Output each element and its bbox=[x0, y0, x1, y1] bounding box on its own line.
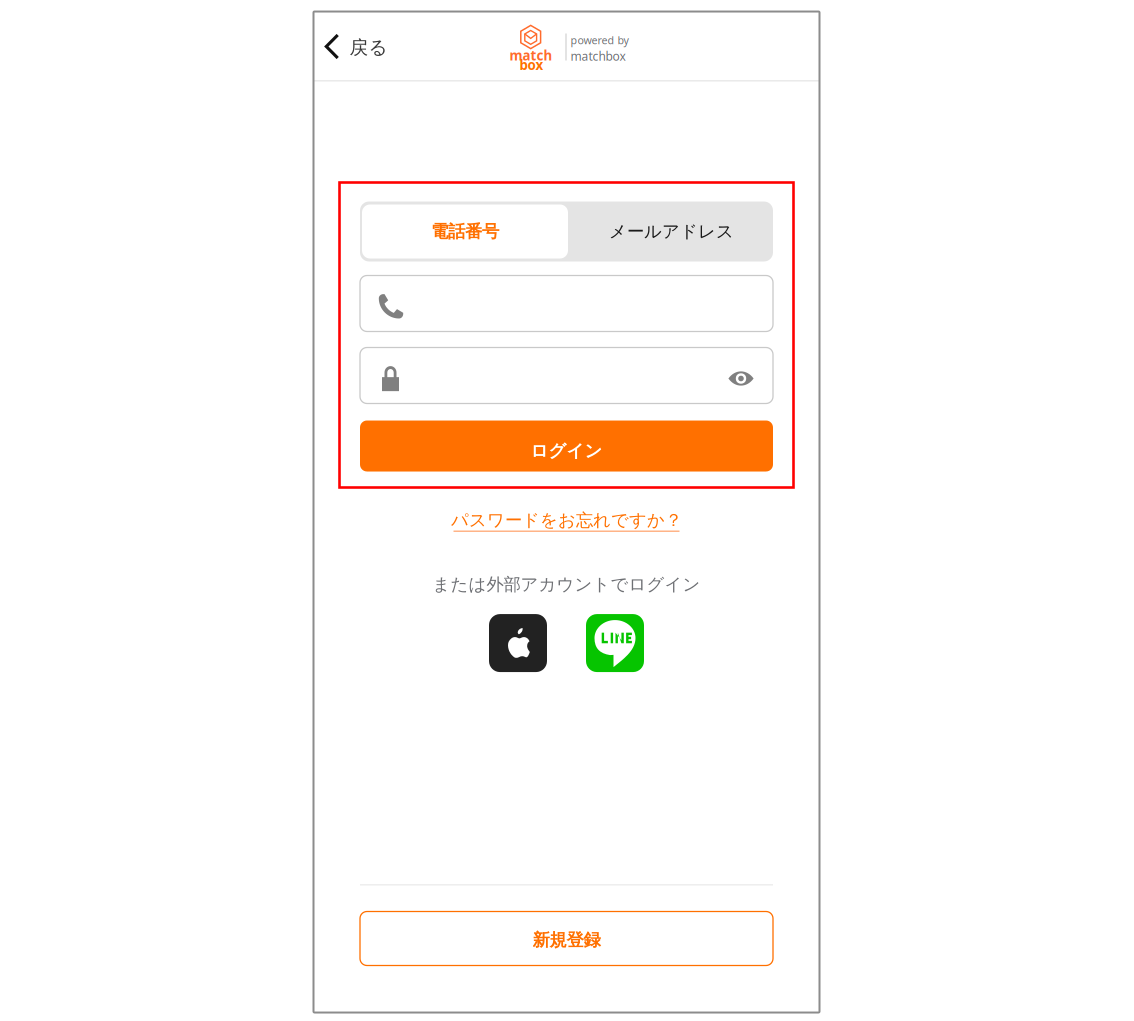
staticText: 新規登録 bbox=[532, 929, 600, 951]
button[interactable]: Sign in with LINE bbox=[586, 614, 644, 672]
staticText: matchbox bbox=[570, 48, 625, 64]
button[interactable]: パスワードをお忘れですか？ bbox=[451, 509, 682, 532]
button[interactable]: メールアドレス bbox=[570, 201, 773, 261]
button[interactable]: 新規登録 bbox=[360, 911, 773, 965]
staticText: box bbox=[519, 56, 543, 74]
staticText: ログイン bbox=[530, 440, 602, 462]
staticText: 電話番号 bbox=[431, 221, 499, 242]
button[interactable]: Show password bbox=[728, 368, 773, 383]
staticText: メールアドレス bbox=[609, 221, 734, 242]
staticText: パスワードをお忘れですか？ bbox=[451, 509, 682, 531]
button[interactable]: 電話番号 bbox=[360, 201, 570, 261]
staticText: powered by bbox=[570, 33, 628, 47]
staticText: match bbox=[509, 46, 552, 64]
button[interactable]: 戻る bbox=[313, 11, 443, 81]
staticText: または外部アカウントでログイン bbox=[432, 574, 700, 595]
staticText: 戻る bbox=[349, 36, 387, 59]
button[interactable]: Sign in with Apple bbox=[489, 614, 547, 672]
button[interactable]: ログイン bbox=[360, 420, 773, 471]
